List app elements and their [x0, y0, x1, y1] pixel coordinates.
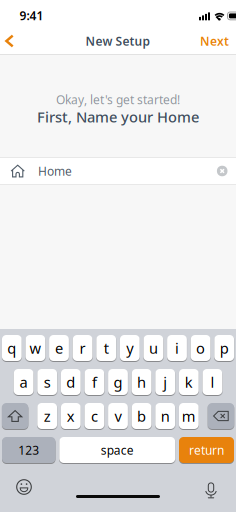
staticText: d [66, 372, 75, 392]
button[interactable]: Next [200, 33, 236, 49]
staticText: i [175, 338, 179, 358]
staticText: p [220, 338, 229, 358]
staticText: t [104, 338, 109, 358]
button[interactable]: i [167, 335, 187, 361]
staticText: q [7, 338, 16, 358]
staticText: Home [38, 163, 72, 179]
staticText: New Setup [85, 33, 150, 49]
staticText: return [189, 442, 224, 458]
staticText: First, Name your Home [37, 107, 199, 127]
staticText: o [196, 338, 205, 358]
button[interactable]: j [155, 369, 175, 395]
staticText: k [185, 372, 193, 392]
staticText: 123 [18, 442, 39, 458]
staticText: g [113, 372, 122, 392]
staticText: Okay, let's get started! [56, 91, 180, 107]
button[interactable]: c [84, 403, 104, 429]
button[interactable]: s [37, 369, 57, 395]
staticText: b [137, 406, 146, 426]
button[interactable]: Back [0, 29, 14, 53]
button[interactable]: t [96, 335, 116, 361]
button[interactable]: m [179, 403, 199, 429]
staticText: space [101, 442, 134, 458]
button[interactable]: w [25, 335, 45, 361]
button[interactable]: x [61, 403, 81, 429]
button[interactable]: n [155, 403, 175, 429]
staticText: s [44, 372, 51, 392]
button[interactable]: Clear text [217, 166, 227, 176]
button[interactable]: h [132, 369, 151, 395]
button[interactable]: Home name text field [0, 158, 236, 184]
staticText: w [29, 338, 41, 358]
staticText: j [163, 372, 167, 392]
button[interactable]: d [61, 369, 81, 395]
button[interactable]: y [120, 335, 140, 361]
button[interactable]: g [108, 369, 128, 395]
button[interactable]: o [191, 335, 210, 361]
staticText: v [114, 406, 121, 426]
button[interactable]: Delete [208, 403, 234, 429]
button[interactable]: e [49, 335, 69, 361]
button[interactable]: r [73, 335, 92, 361]
button[interactable]: return [179, 437, 234, 463]
staticText: l [210, 372, 214, 392]
button[interactable]: 123 [2, 437, 55, 463]
staticText: Next [200, 33, 229, 49]
staticText: c [91, 406, 98, 426]
staticText: u [149, 338, 158, 358]
staticText: n [161, 406, 170, 426]
staticText: h [137, 372, 146, 392]
button[interactable]: v [108, 403, 128, 429]
button[interactable]: q [2, 335, 22, 361]
button[interactable]: k [179, 369, 199, 395]
staticText: y [126, 338, 133, 358]
button[interactable]: f [84, 369, 104, 395]
staticText: e [55, 338, 63, 358]
staticText: m [182, 406, 196, 426]
button[interactable]: Emoji [8, 471, 40, 503]
button[interactable]: Dictation [197, 472, 225, 503]
staticText: a [20, 372, 28, 392]
button[interactable]: a [14, 369, 33, 395]
staticText: f [92, 372, 97, 392]
staticText: x [67, 406, 75, 426]
button[interactable]: z [37, 403, 57, 429]
button[interactable]: b [132, 403, 151, 429]
button[interactable]: p [214, 335, 234, 361]
button[interactable]: Shift [2, 403, 28, 429]
button[interactable]: l [202, 369, 222, 395]
button[interactable]: u [143, 335, 163, 361]
staticText: z [44, 406, 51, 426]
staticText: r [80, 338, 86, 358]
button[interactable]: space [59, 437, 175, 463]
staticText: 9:41 [19, 7, 43, 23]
